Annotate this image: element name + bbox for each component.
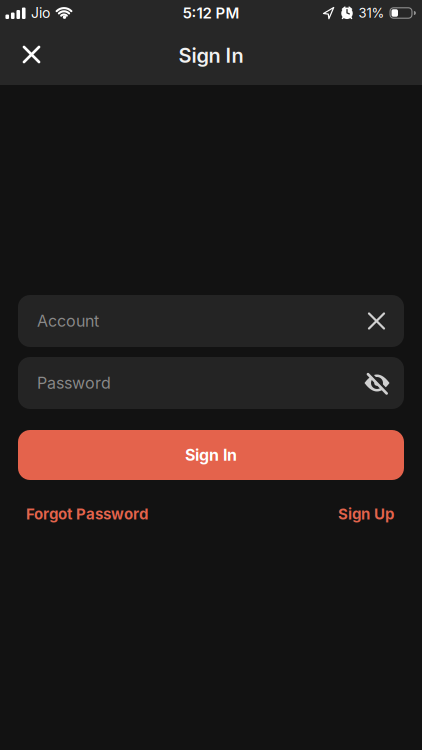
staticText: Forgot Password — [26, 505, 148, 523]
staticText: 5:12 PM — [182, 4, 239, 22]
staticText: Sign Up — [338, 505, 394, 523]
staticText: Password — [37, 373, 111, 393]
button[interactable]: Sign In — [18, 430, 404, 480]
staticText: Sign In — [185, 445, 237, 465]
button[interactable]: Close — [0, 26, 51, 85]
button[interactable]: Password — [18, 357, 404, 409]
staticText: Account — [37, 311, 99, 331]
button[interactable]: Forgot Password — [26, 505, 148, 523]
button[interactable]: Sign Up — [338, 505, 394, 523]
staticText: Jio — [31, 4, 50, 21]
staticText: 31% — [358, 5, 384, 21]
staticText: Sign In — [178, 43, 243, 68]
button[interactable]: Account — [18, 295, 404, 347]
